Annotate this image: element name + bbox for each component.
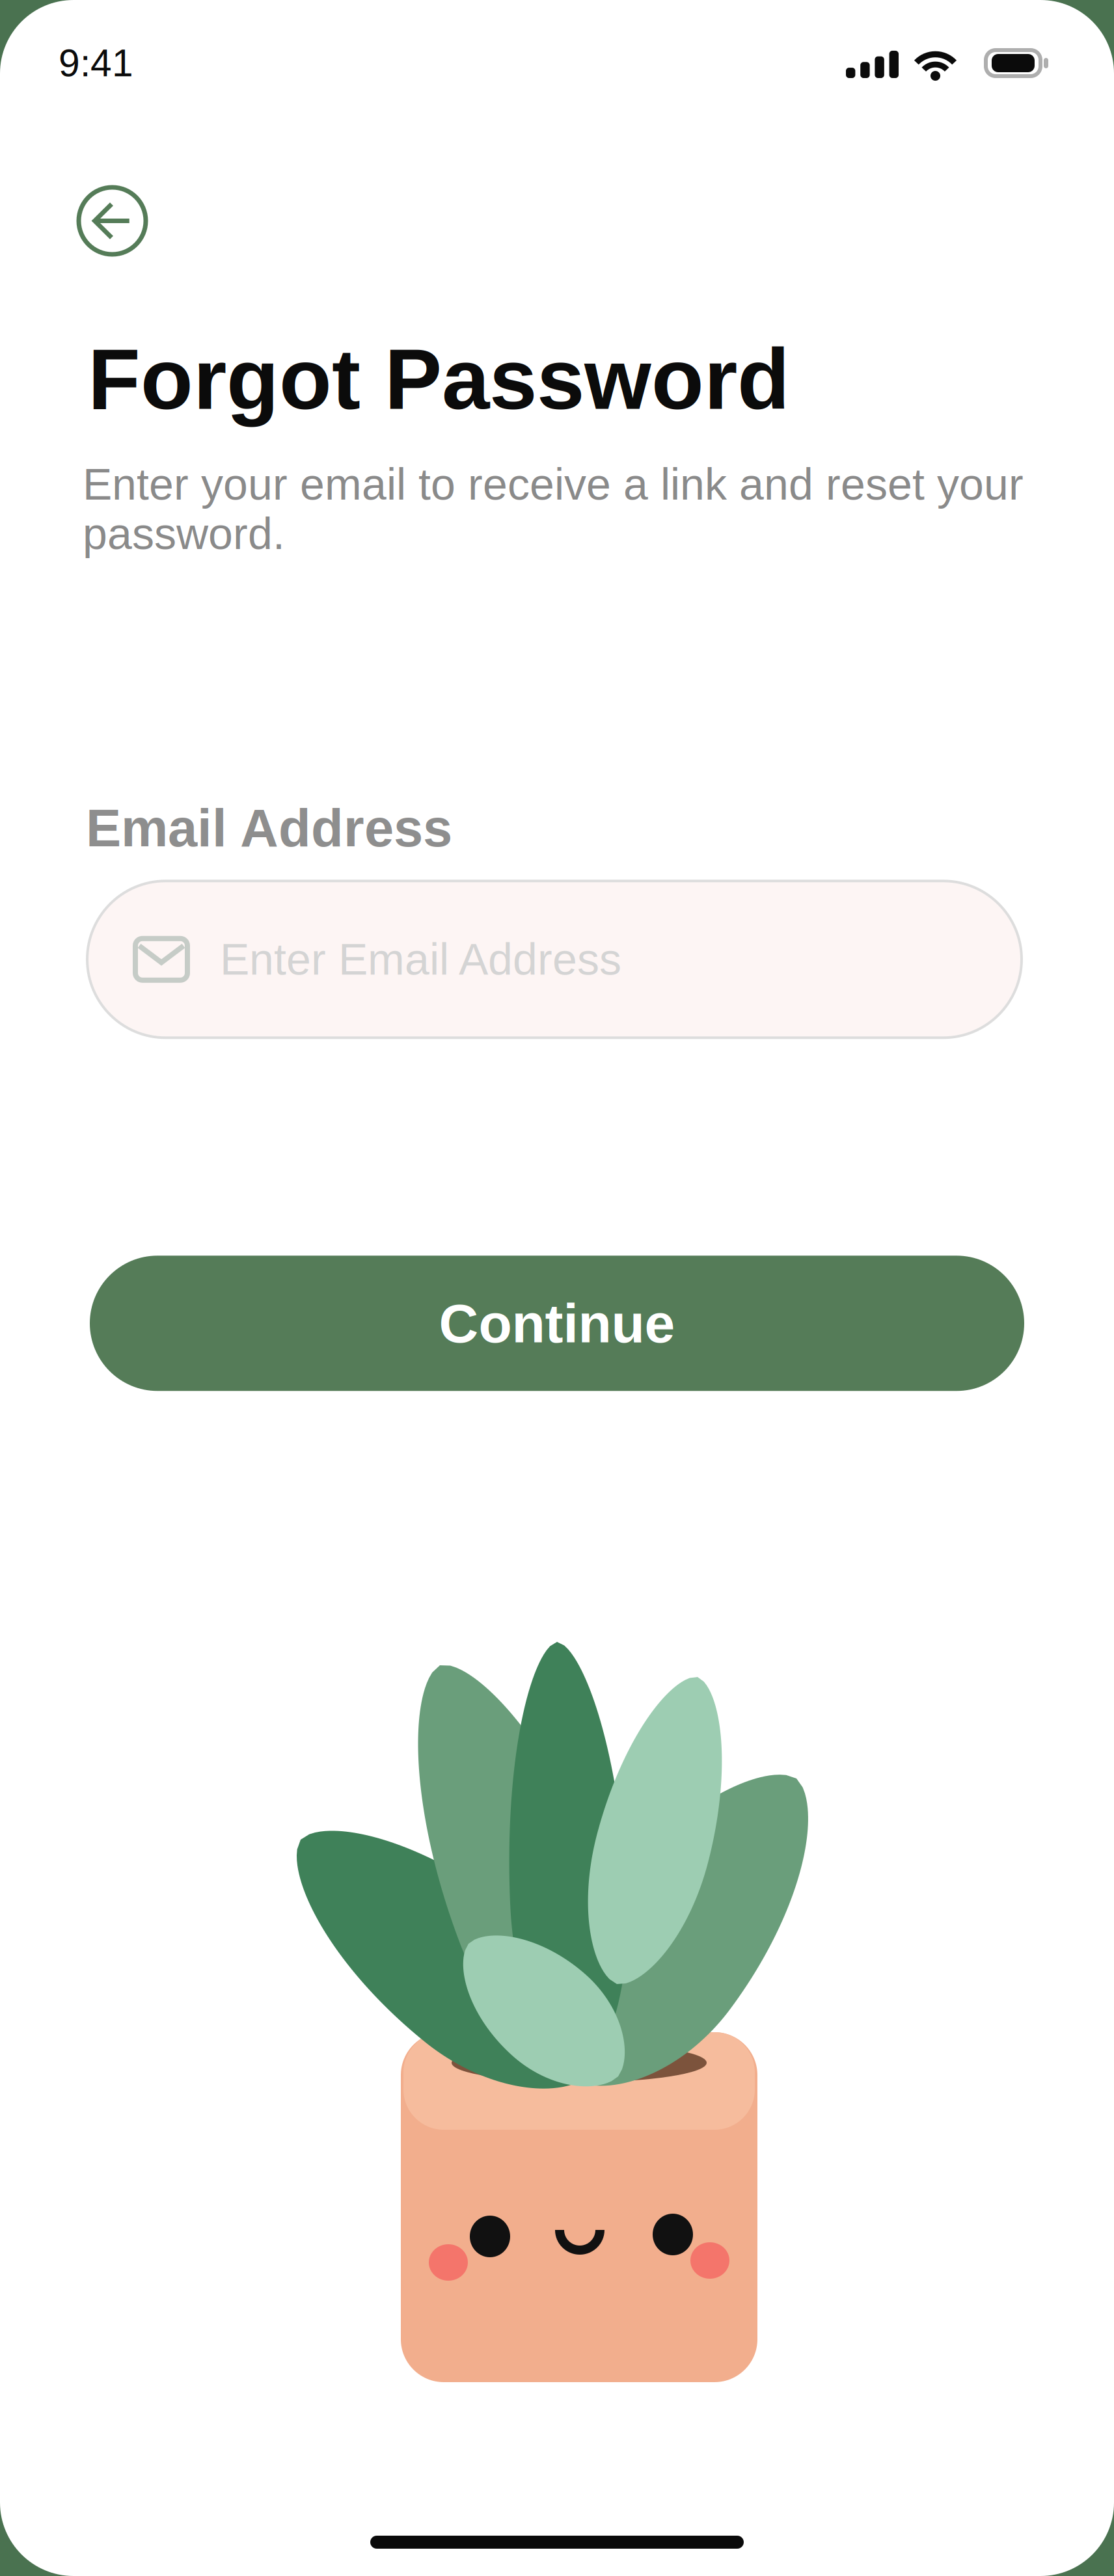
staticText: Email Address xyxy=(86,798,452,858)
staticText: Continue xyxy=(439,1293,675,1354)
staticText: Enter your email to receive a link and r… xyxy=(83,460,1024,558)
button[interactable]: Continue xyxy=(90,1256,1024,1391)
staticText: Forgot Password xyxy=(88,331,790,427)
staticText: 9:41 xyxy=(59,42,133,84)
staticText: Enter Email Address xyxy=(220,935,621,984)
button[interactable]: Back xyxy=(79,187,146,254)
